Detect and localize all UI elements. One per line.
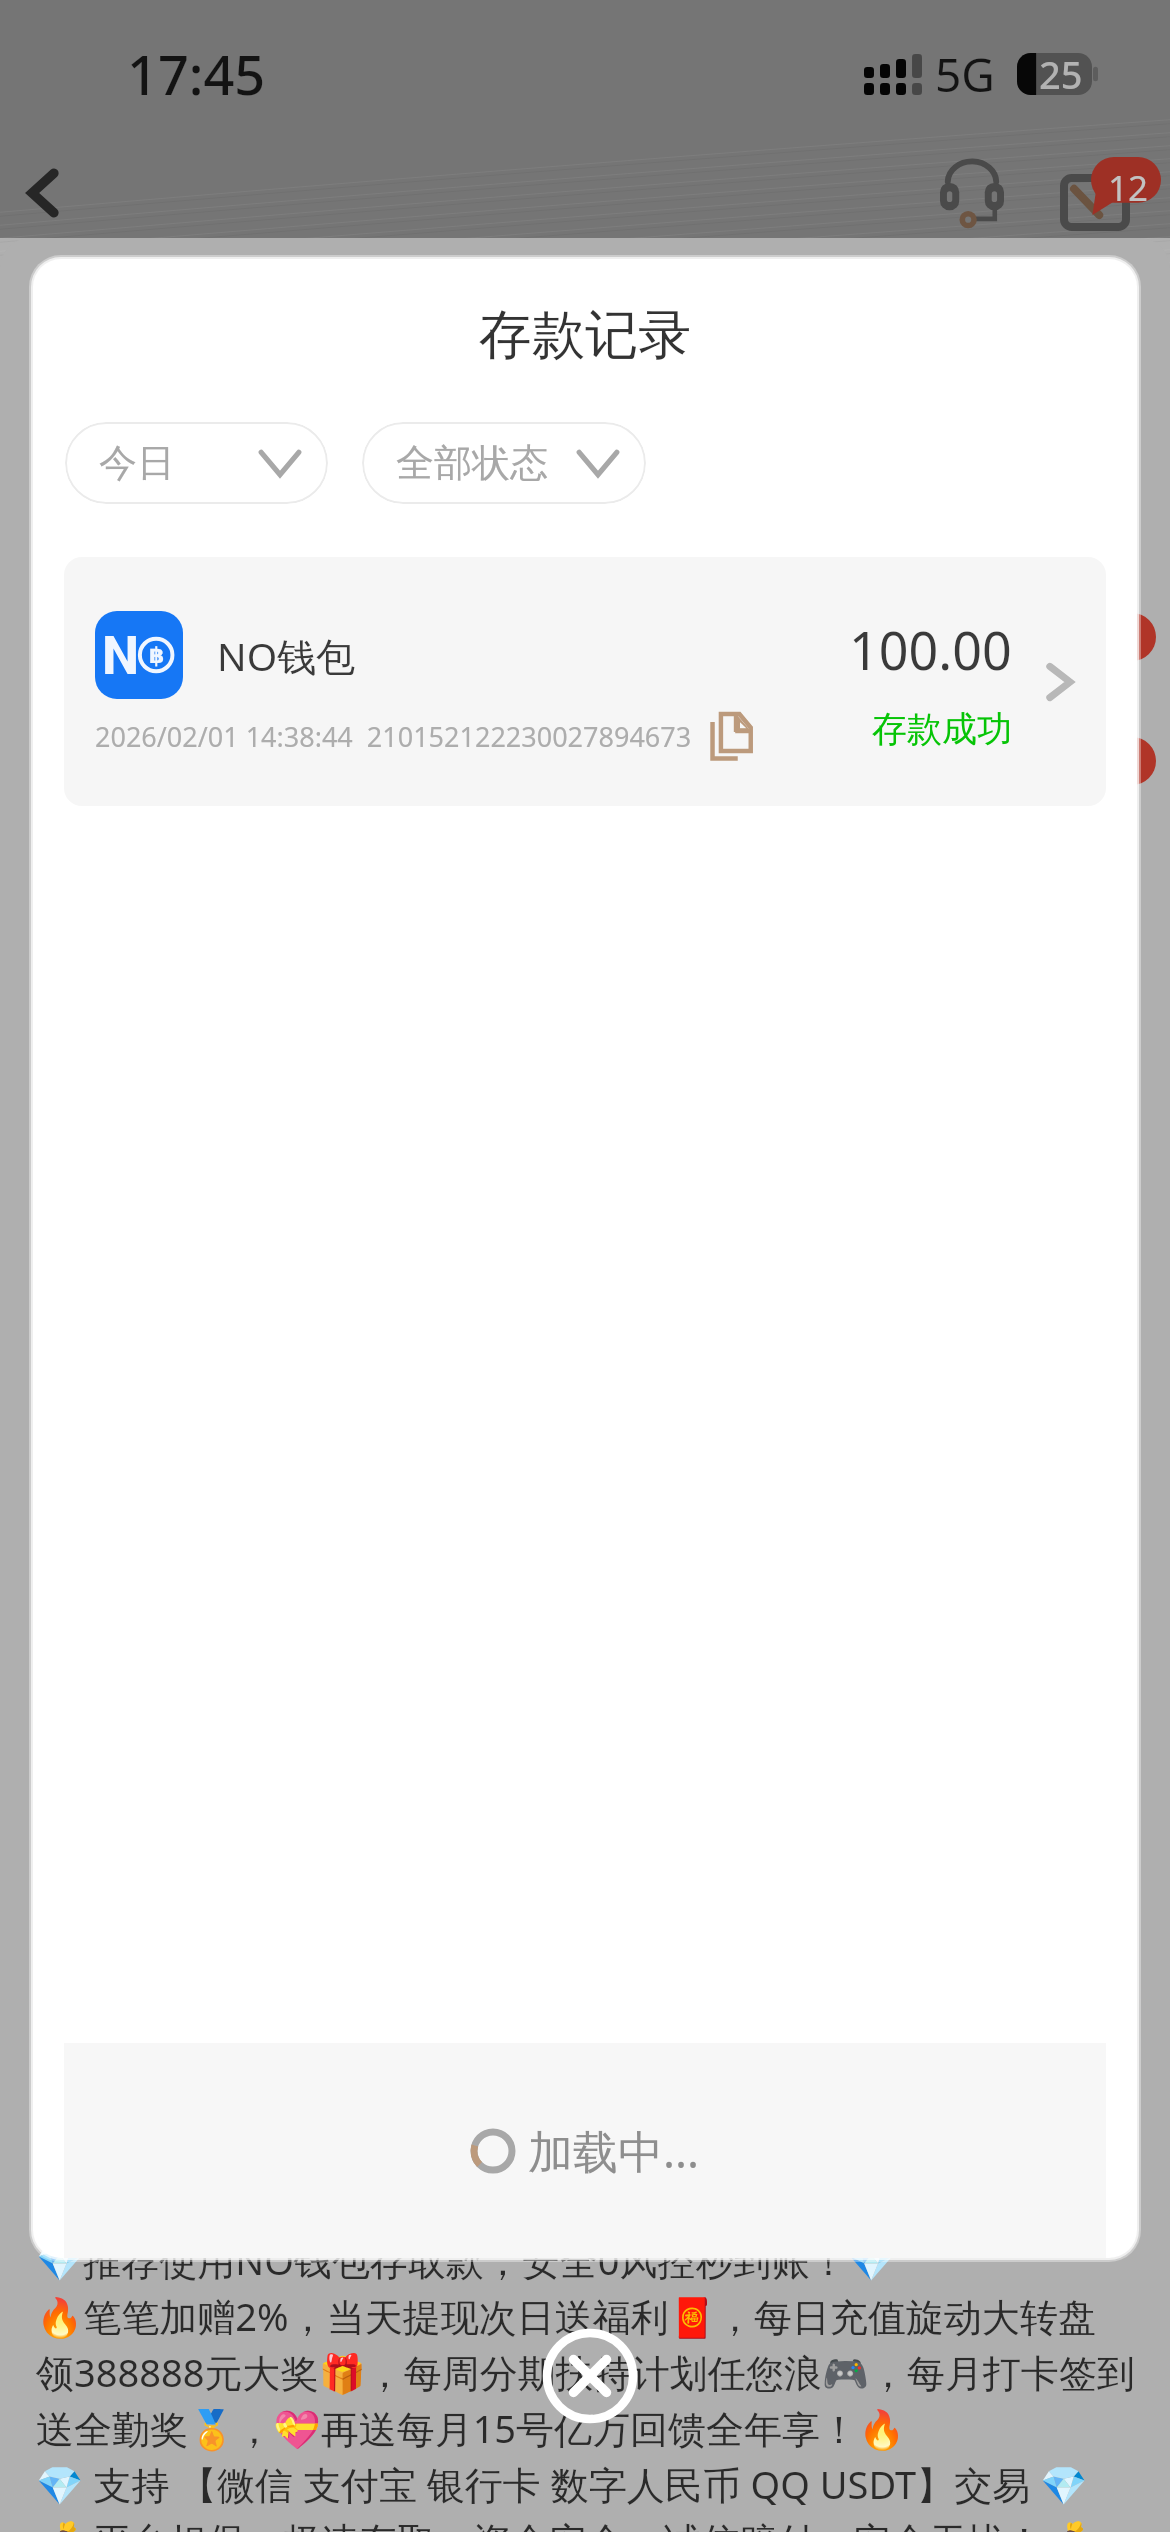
staticText: 领388888元大奖🎁，每周分期扶持计划任您浪🎮，每月打卡签到	[36, 2346, 1136, 2398]
button[interactable]: Back	[8, 158, 78, 228]
staticText: ฿	[149, 643, 165, 669]
staticText: 2026/02/01 14:38:44 21015212223002789467…	[95, 718, 692, 755]
staticText: 17:45	[127, 37, 266, 111]
staticText: 5G	[935, 43, 995, 106]
staticText: 💎 支持 【微信 支付宝 银行卡 数字人民币 QQ USDT】交易 💎	[36, 2458, 1088, 2510]
staticText: 25	[1039, 48, 1083, 100]
staticText: 存款成功	[872, 707, 1012, 751]
staticText: 加载中...	[528, 2120, 700, 2181]
button[interactable]: Close	[540, 2326, 640, 2426]
button[interactable]: Messages	[1060, 148, 1156, 238]
staticText: 全部状态	[396, 439, 548, 487]
staticText: 🔥笔笔加赠2%，当天提现次日送福利🧧，每日充值旋动大转盘	[36, 2290, 1096, 2342]
staticText: 12	[1108, 164, 1149, 212]
button[interactable]: 全部状态	[362, 422, 646, 504]
staticText: 💎推荐使用NO钱包存取款，安全0风控秒到账！💎	[36, 2234, 895, 2286]
staticText: 送全勤奖🏅，💝再送每月15号亿万回馈全年享！🔥	[36, 2402, 906, 2454]
button[interactable]: 今日	[65, 422, 328, 504]
button[interactable]: Promotion	[1108, 613, 1156, 661]
staticText: 100.00	[849, 614, 1012, 685]
staticText: 今日	[99, 439, 175, 487]
staticText: 存款记录	[479, 302, 691, 369]
button[interactable]: Promotion 2	[1108, 737, 1156, 785]
button[interactable]: Copy	[706, 711, 756, 761]
button[interactable]: ฿	[64, 557, 1106, 806]
staticText: NO钱包	[217, 629, 356, 682]
button[interactable]: Customer support	[930, 151, 1014, 235]
staticText: 💰 平台担保，极速存取，资金安全，诚信赔付，安全无忧！💰	[36, 2514, 1091, 2532]
